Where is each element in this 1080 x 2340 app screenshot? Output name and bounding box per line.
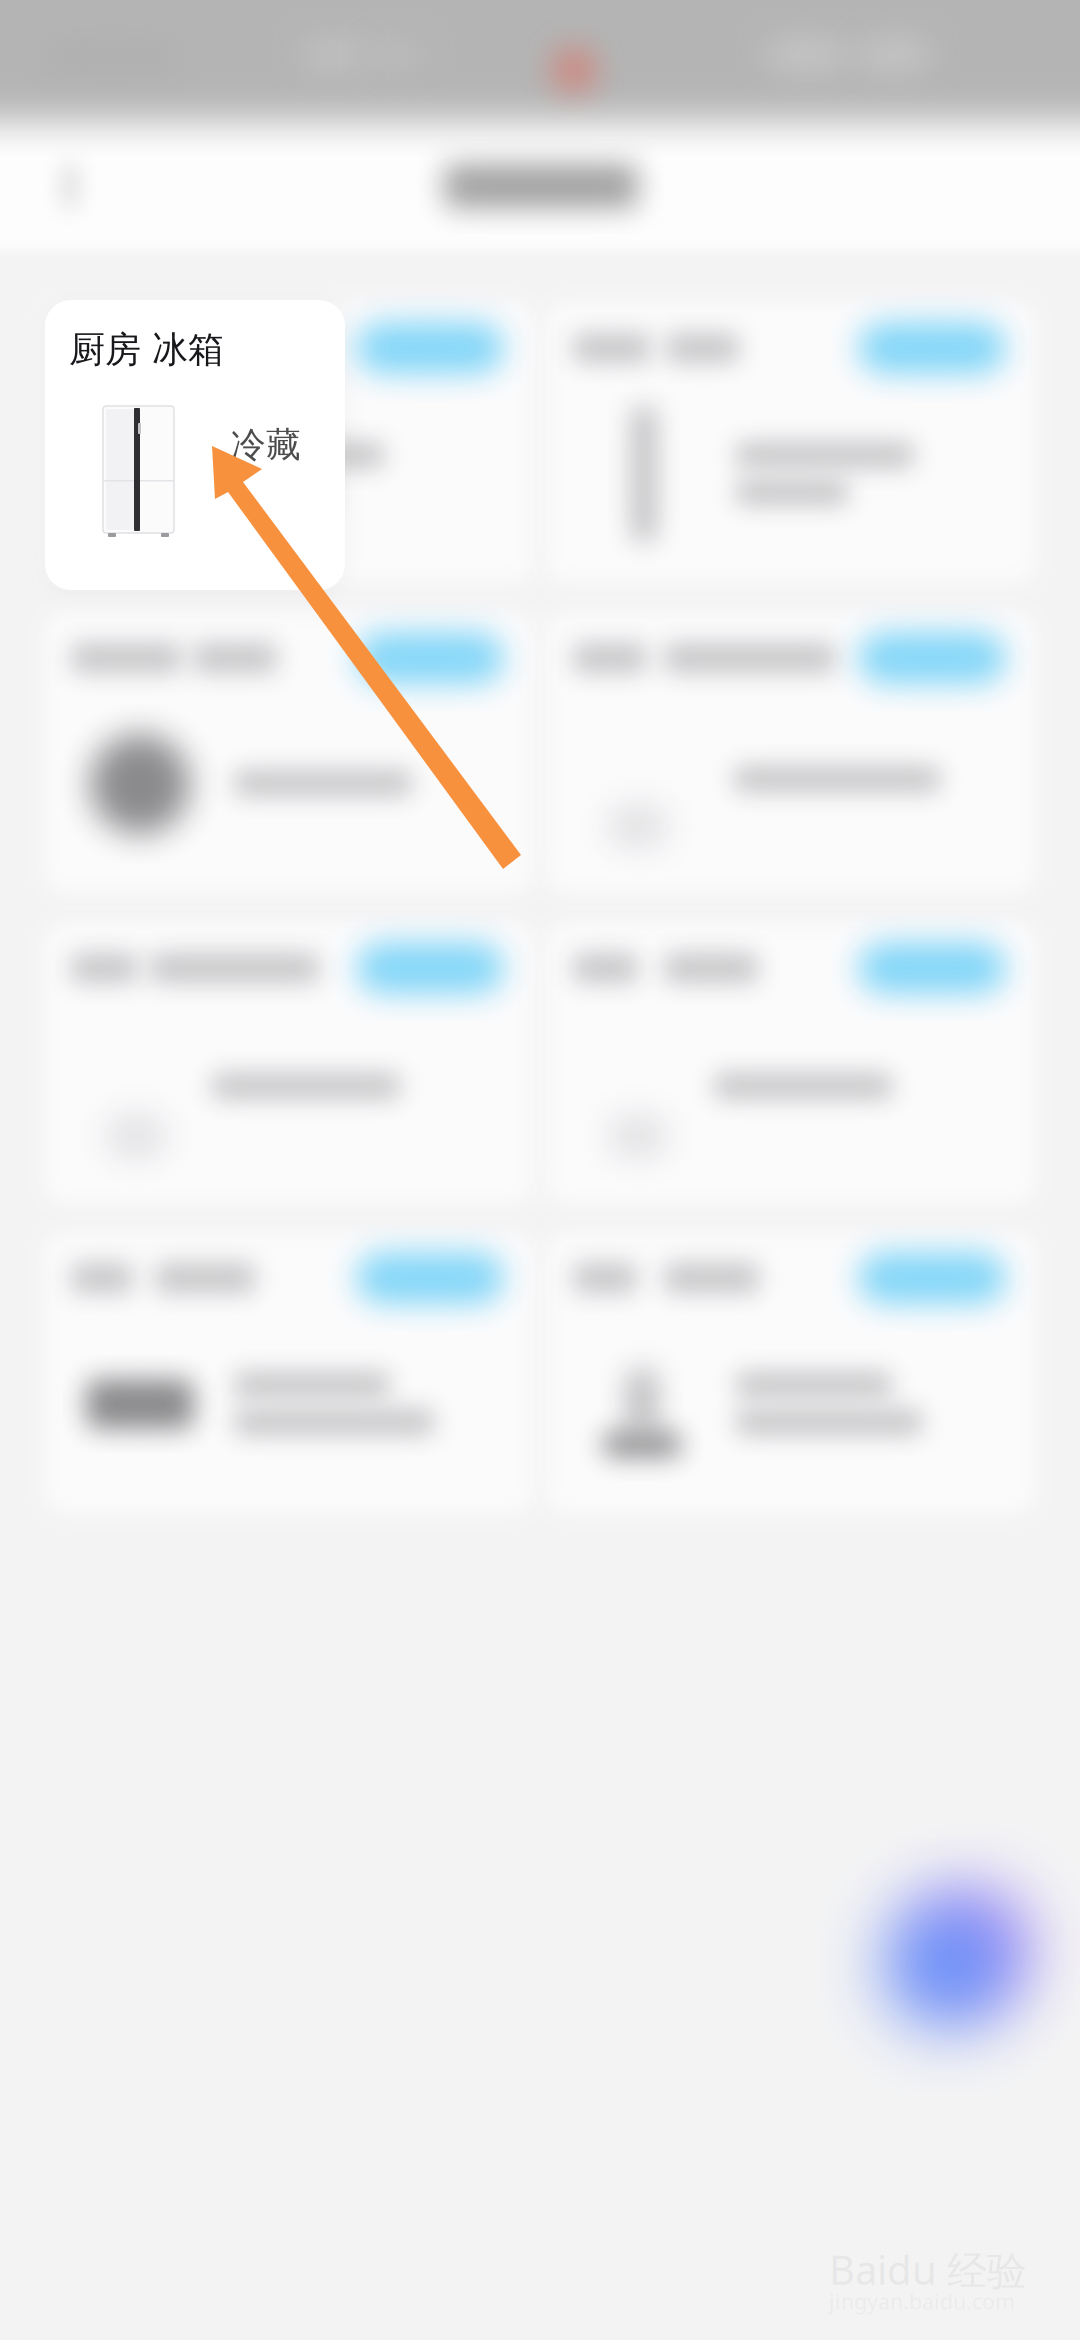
- button[interactable]: [44, 612, 534, 894]
- button[interactable]: [44, 302, 534, 584]
- button[interactable]: Back: [5, 106, 135, 266]
- button[interactable]: 厨房 冰箱: [45, 300, 345, 590]
- staticText: 冷藏: [231, 423, 301, 467]
- staticText: Baidu 经验: [829, 2242, 1027, 2297]
- button[interactable]: [546, 922, 1036, 1204]
- button[interactable]: [44, 1232, 534, 1514]
- staticText: 厨房 冰箱: [69, 327, 224, 372]
- button[interactable]: [44, 922, 534, 1204]
- button[interactable]: [546, 612, 1036, 894]
- button[interactable]: [546, 302, 1036, 584]
- button[interactable]: [546, 1232, 1036, 1514]
